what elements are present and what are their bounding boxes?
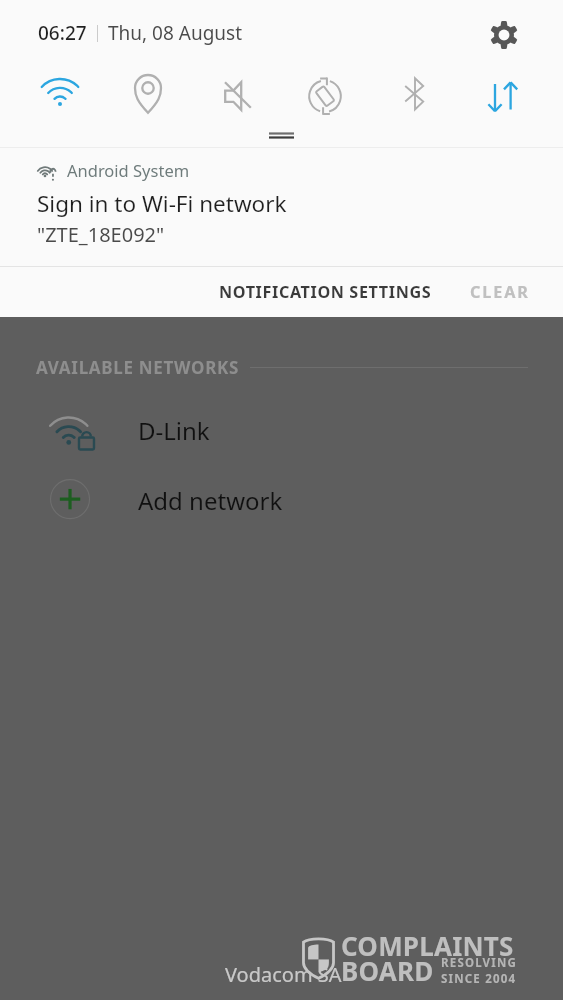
staticText: D-Link [138,414,210,447]
staticText: BOARD [341,953,434,988]
staticText: AVAILABLE NETWORKS [36,356,240,379]
staticText: 06:27 [38,20,87,46]
button[interactable]: CLEAR [446,269,563,315]
button[interactable]: Mobile data [475,69,529,123]
button[interactable]: NOTIFICATION SETTINGS [205,269,446,315]
button[interactable]: Location [121,69,175,123]
staticText: Add network [138,484,283,517]
staticText: Android System [67,159,190,181]
staticText: CLEAR [470,281,530,303]
button[interactable]: Sound off [210,69,264,123]
button[interactable]: Add network [0,472,563,528]
staticText: NOTIFICATION SETTINGS [219,281,432,303]
button[interactable]: Settings [487,18,521,52]
staticText: RESOLVING [441,955,518,971]
button[interactable]: Wi-Fi [33,69,87,123]
staticText: Vodacom SA [225,961,342,988]
staticText: COMPLAINTS [341,928,514,963]
button[interactable]: Auto rotate [298,69,352,123]
staticText: Thu, 08 August [108,20,243,46]
staticText: SINCE 2004 [441,971,517,987]
staticText: "ZTE_18E092" [37,221,165,248]
button[interactable]: D-Link [0,402,563,458]
staticText: Sign in to Wi-Fi network [37,188,287,219]
button[interactable]: Bluetooth [387,69,441,123]
